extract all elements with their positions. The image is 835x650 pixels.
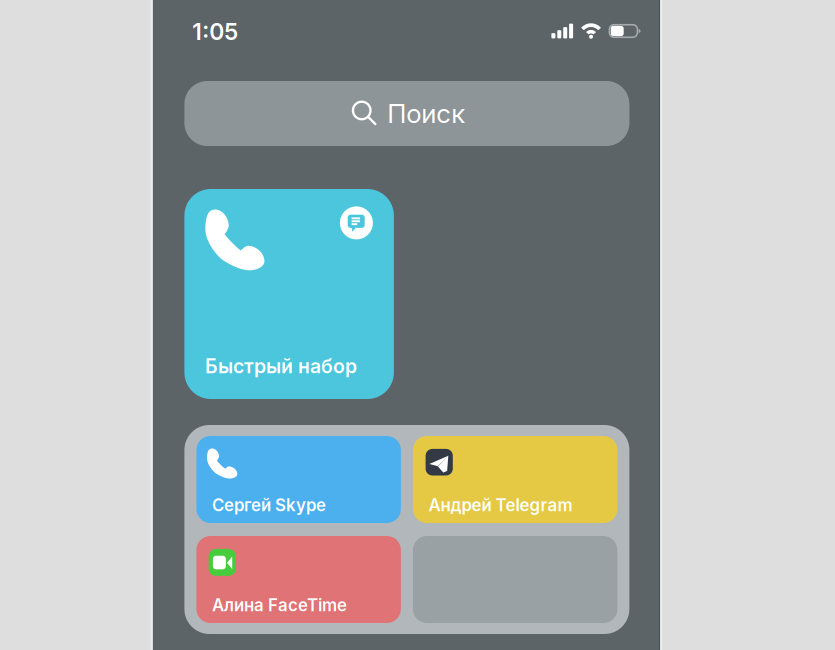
staticText: Быстрый набор xyxy=(205,354,357,378)
button[interactable]: Андрей Telegram xyxy=(413,436,617,523)
staticText: Поиск xyxy=(387,98,465,129)
staticText: 1:05 xyxy=(192,18,238,46)
button[interactable]: Поиск xyxy=(184,81,629,146)
button[interactable]: Быстрый набор xyxy=(184,189,394,399)
button[interactable]: Алина FaceTime xyxy=(196,536,401,623)
staticText: Сергей Skype xyxy=(212,495,326,515)
staticText: Андрей Telegram xyxy=(428,495,572,515)
button[interactable]: Сергей Skype xyxy=(196,436,401,523)
staticText: Алина FaceTime xyxy=(212,595,347,615)
